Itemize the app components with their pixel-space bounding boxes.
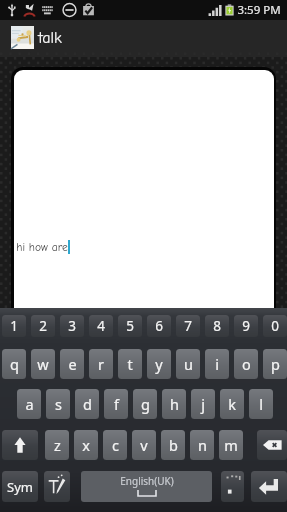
button[interactable]: a	[17, 389, 41, 419]
button[interactable]: e	[60, 349, 84, 379]
staticText: b	[169, 435, 178, 455]
staticText: s	[55, 394, 62, 414]
button[interactable]: s	[46, 389, 70, 419]
staticText: z	[54, 435, 61, 455]
button[interactable]: Shift	[2, 430, 38, 460]
button[interactable]: 9	[234, 315, 258, 337]
button[interactable]: Handwriting input	[44, 471, 70, 502]
button[interactable]: 6	[147, 315, 171, 337]
staticText: m	[224, 435, 238, 455]
button[interactable]: Period	[221, 471, 244, 502]
button[interactable]: 2	[31, 315, 55, 337]
staticText: f	[114, 394, 119, 414]
staticText: a	[25, 394, 34, 414]
staticText: hi how are	[16, 241, 68, 254]
staticText: l	[259, 394, 263, 414]
button[interactable]: hi how are	[14, 70, 274, 309]
button[interactable]: 3	[60, 315, 84, 337]
staticText: 4	[97, 317, 105, 335]
staticText: Sym	[7, 478, 33, 496]
button[interactable]: 7	[176, 315, 200, 337]
button[interactable]: q	[2, 349, 26, 379]
staticText: 6	[155, 317, 163, 335]
button[interactable]: 1	[2, 315, 26, 337]
staticText: 0	[271, 317, 279, 335]
staticText: talk	[38, 29, 62, 47]
staticText: c	[112, 435, 119, 455]
staticText: q	[10, 354, 19, 374]
staticText: e	[68, 354, 77, 374]
staticText: t	[127, 354, 133, 374]
button[interactable]: g	[133, 389, 157, 419]
staticText: x	[82, 435, 90, 455]
button[interactable]: i	[205, 349, 229, 379]
staticText: 3:59 PM	[237, 2, 281, 18]
button[interactable]: x	[74, 430, 98, 460]
button[interactable]: h	[162, 389, 186, 419]
button[interactable]: p	[263, 349, 287, 379]
button[interactable]: 8	[205, 315, 229, 337]
staticText: r	[98, 354, 104, 374]
button[interactable]: c	[103, 430, 127, 460]
staticText: j	[201, 394, 205, 414]
staticText: 2	[39, 317, 47, 335]
staticText: o	[242, 354, 251, 374]
staticText: k	[228, 394, 236, 414]
button[interactable]: Enter	[251, 471, 287, 502]
button[interactable]: k	[220, 389, 244, 419]
staticText: g	[141, 394, 150, 414]
button[interactable]: m	[219, 430, 243, 460]
button[interactable]: u	[176, 349, 200, 379]
staticText: English(UK)	[120, 474, 174, 488]
button[interactable]: Space	[81, 471, 212, 502]
button[interactable]: r	[89, 349, 113, 379]
staticText: 3	[68, 317, 76, 335]
button[interactable]: 5	[118, 315, 142, 337]
staticText: 1	[10, 317, 18, 335]
staticText: p	[271, 354, 280, 374]
staticText: 7	[184, 317, 192, 335]
staticText: w	[37, 354, 49, 374]
button[interactable]: l	[249, 389, 273, 419]
button[interactable]: 0	[263, 315, 287, 337]
button[interactable]: d	[75, 389, 99, 419]
button[interactable]: o	[234, 349, 258, 379]
button[interactable]: t	[118, 349, 142, 379]
button[interactable]: w	[31, 349, 55, 379]
button[interactable]: talk	[0, 20, 287, 57]
staticText: y	[155, 354, 163, 374]
button[interactable]: j	[191, 389, 215, 419]
staticText: 5	[126, 317, 134, 335]
button[interactable]: y	[147, 349, 171, 379]
staticText: n	[198, 435, 207, 455]
button[interactable]: Backspace	[257, 430, 287, 460]
staticText: 8	[213, 317, 221, 335]
button[interactable]: b	[161, 430, 185, 460]
button[interactable]: f	[104, 389, 128, 419]
button[interactable]: v	[132, 430, 156, 460]
staticText: v	[140, 435, 148, 455]
staticText: u	[184, 354, 193, 374]
button[interactable]: n	[190, 430, 214, 460]
staticText: d	[83, 394, 92, 414]
staticText: 9	[242, 317, 250, 335]
staticText: i	[215, 354, 219, 374]
button[interactable]: 4	[89, 315, 113, 337]
button[interactable]: Sym	[2, 471, 38, 502]
staticText: h	[170, 394, 179, 414]
button[interactable]: z	[45, 430, 69, 460]
